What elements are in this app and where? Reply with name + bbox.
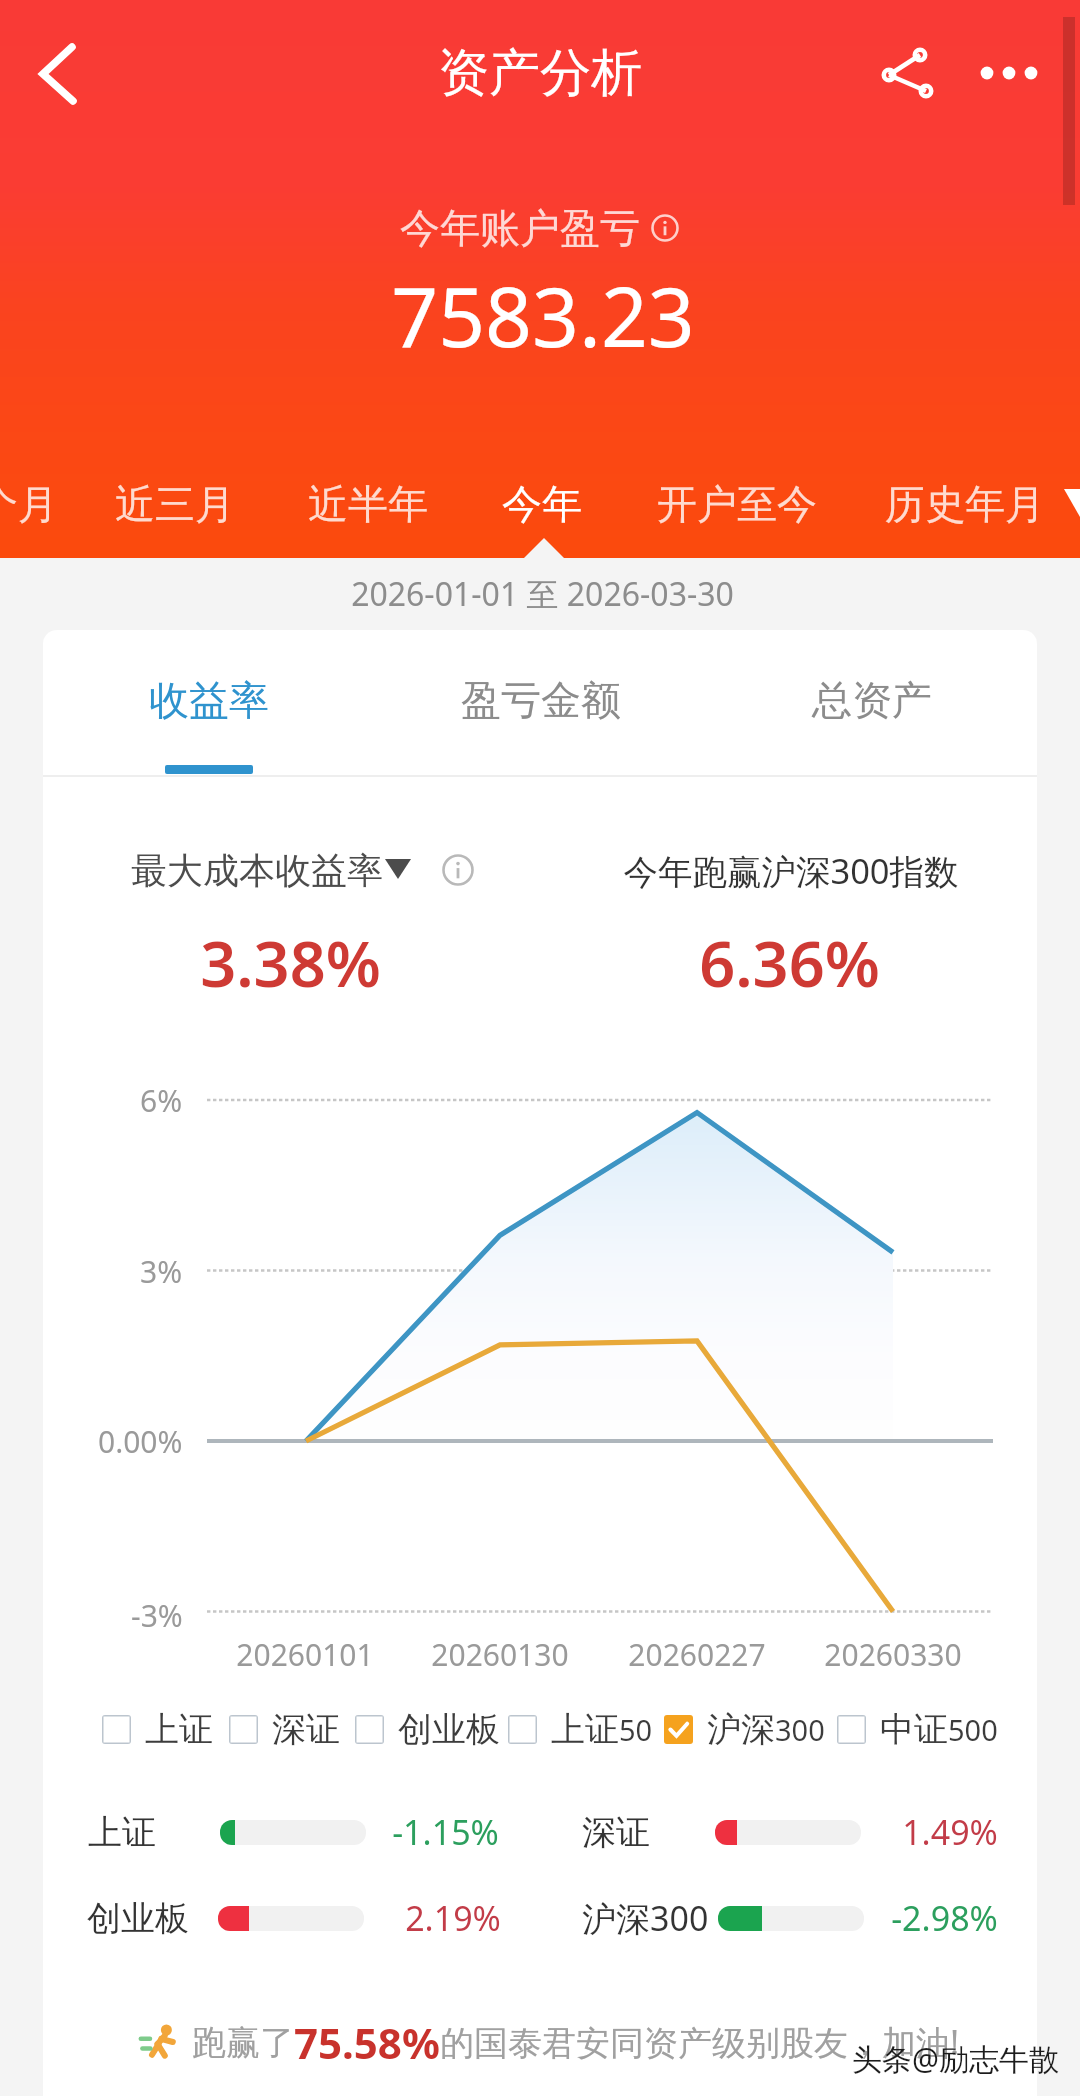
staticText: 2026-01-01 至 2026-03-30 [351,572,734,616]
button[interactable]: Change metric [385,859,411,879]
staticText: 今年账户盈亏 [400,203,640,253]
button[interactable]: 今年 [447,449,637,559]
button[interactable]: Back [18,28,110,120]
staticText: 沪深300 [582,1895,709,1941]
button[interactable]: 创业板 [355,1705,500,1753]
staticText: 1.49% [902,1809,998,1855]
staticText: 3% [140,1251,183,1292]
button[interactable]: 盈亏金额 [391,630,691,770]
staticText: 上证 [551,1708,619,1751]
button[interactable]: 近三月 [80,449,270,559]
staticText: 75.58% [294,2014,440,2070]
staticText: 创业板 [87,1897,189,1940]
staticText: 跑赢了 [192,2021,294,2064]
staticText: 20260101 [236,1634,374,1675]
staticText: 20260227 [628,1634,766,1675]
staticText: 收益率 [149,675,269,725]
staticText: 0.00% [98,1421,183,1462]
button[interactable]: 收益率 [59,630,359,770]
button[interactable]: More options [955,28,1047,120]
staticText: 3.38% [200,920,381,1006]
button[interactable]: 总资产 [722,630,1022,770]
button[interactable]: 创业板 [87,1888,189,1948]
button[interactable]: 沪深300 [582,1888,709,1948]
button[interactable]: 沪深 [664,1705,825,1753]
staticText: -1.15% [392,1809,499,1855]
staticText: 20260330 [824,1634,962,1675]
staticText: 的国泰君安同资产级别股友，加油! [440,2019,960,2065]
staticText: 6.36% [699,920,880,1006]
staticText: 历史年月 [885,479,1045,529]
staticText: 深证 [272,1708,340,1751]
button[interactable]: 跑赢了 [140,2014,960,2070]
button[interactable]: 中证 [837,1705,998,1753]
button[interactable]: 上证 [88,1802,156,1862]
button[interactable]: 上证 [102,1705,213,1753]
staticText: 50 [619,1710,653,1749]
button[interactable]: 深证 [582,1802,650,1862]
staticText: 资产分析 [438,41,642,105]
staticText: -3% [131,1595,183,1636]
staticText: 近三月 [115,479,235,529]
button[interactable]: 开户至今 [642,449,832,559]
staticText: 创业板 [398,1708,500,1751]
button[interactable]: Choose period [1040,470,1080,540]
button[interactable]: 历史年月 [870,449,1060,559]
staticText: 300 [775,1710,825,1749]
staticText: 个月 [0,479,58,529]
staticText: 今年跑赢沪深300指数 [623,847,959,894]
staticText: 7583.23 [391,259,695,371]
staticText: 深证 [582,1811,650,1854]
button[interactable]: Info [442,854,474,886]
staticText: 总资产 [812,675,932,725]
staticText: 2.19% [405,1895,501,1941]
staticText: 盈亏金额 [461,675,621,725]
staticText: 6% [140,1080,183,1121]
staticText: 沪深 [707,1708,775,1751]
staticText: -2.98% [891,1895,998,1941]
staticText: 上证 [88,1811,156,1854]
button[interactable]: 上证 [508,1705,653,1753]
staticText: 头条@励志牛散 [852,2038,1059,2079]
button[interactable]: 深证 [229,1705,340,1753]
staticText: 中证 [880,1708,948,1751]
staticText: 开户至今 [657,479,817,529]
button[interactable]: Share [862,28,954,120]
staticText: 20260130 [431,1634,569,1675]
staticText: 近半年 [308,479,428,529]
staticText: 今年 [502,479,582,529]
button[interactable]: 个月 [0,449,113,559]
button[interactable]: 近半年 [273,449,463,559]
staticText: 500 [948,1710,998,1749]
staticText: 上证 [145,1708,213,1751]
staticText: 最大成本收益率 [131,848,383,893]
